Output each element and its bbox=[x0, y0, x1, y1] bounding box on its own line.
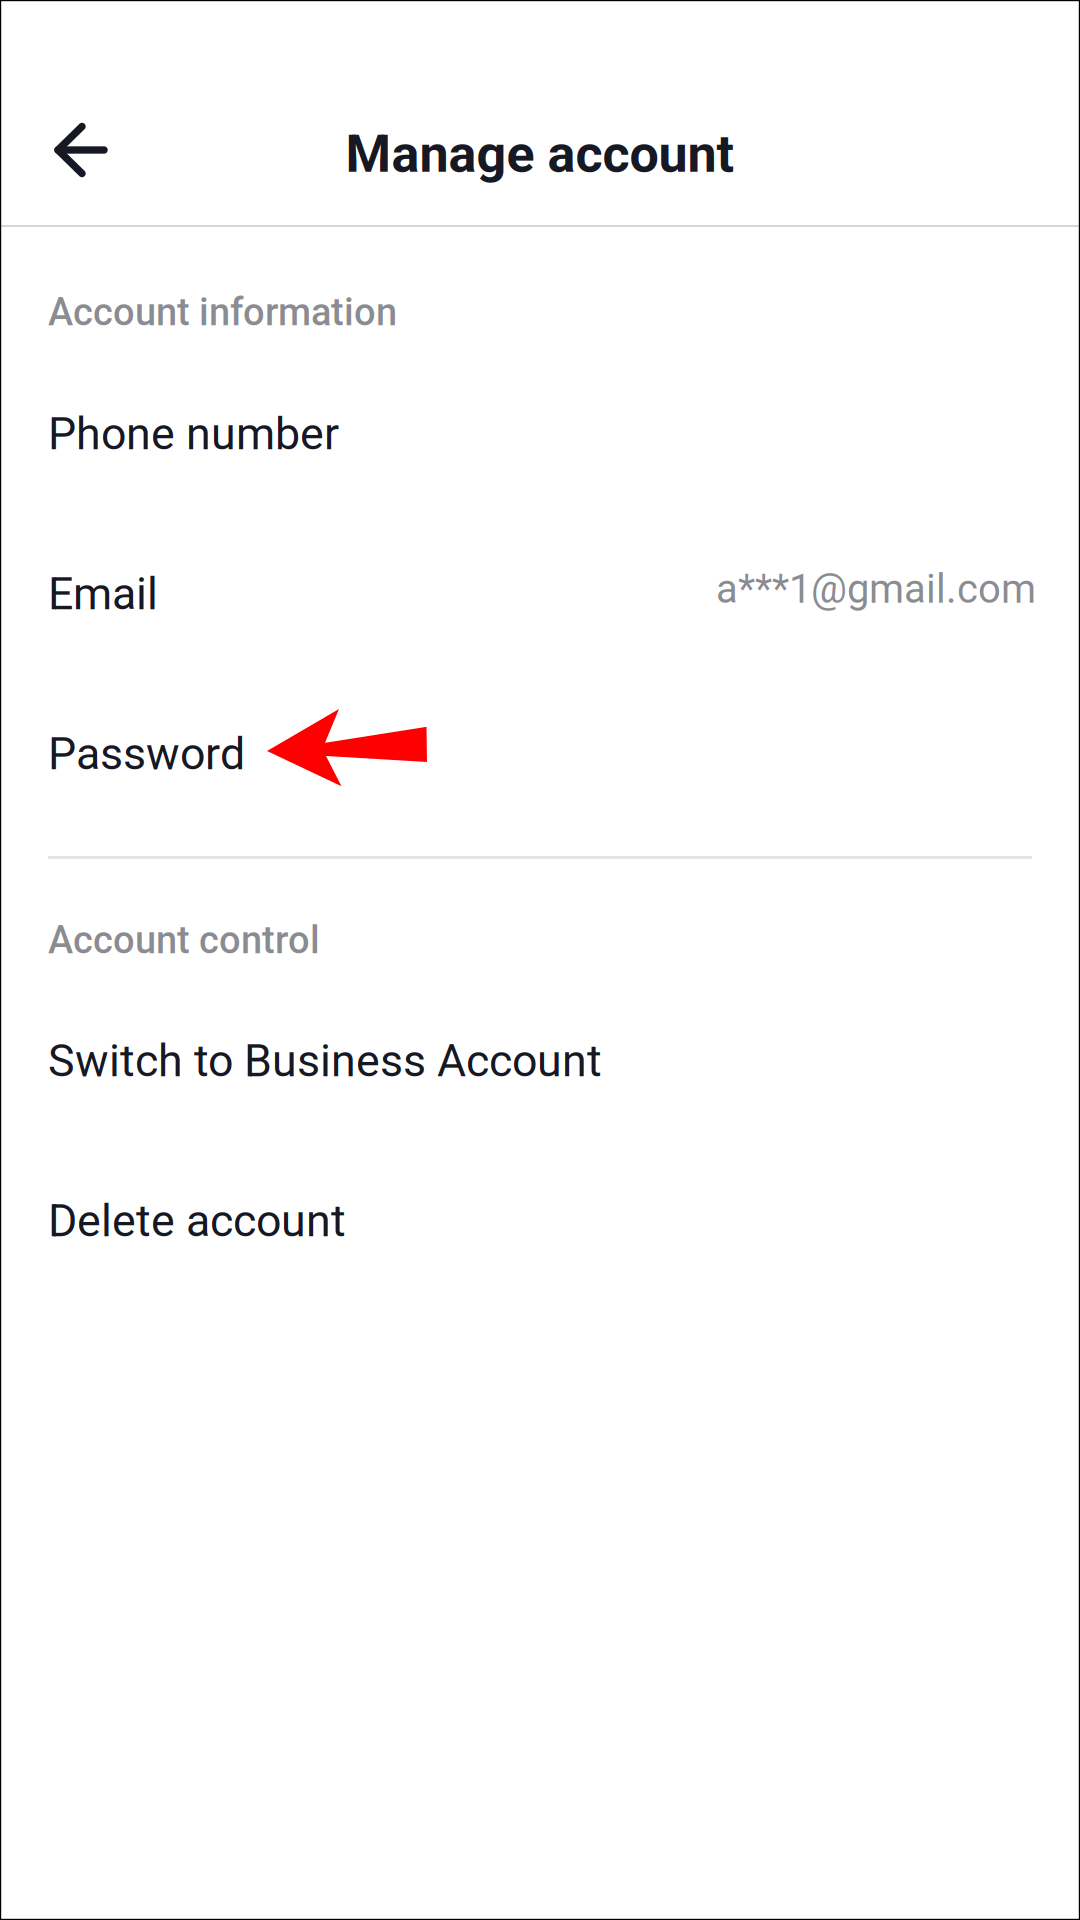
staticText: Account control bbox=[48, 918, 320, 962]
staticText: Phone number bbox=[48, 408, 339, 460]
staticText: Password bbox=[48, 728, 245, 780]
staticText: Delete account bbox=[48, 1195, 346, 1247]
button[interactable]: Switch to Business Account bbox=[0, 981, 1080, 1141]
button[interactable]: Password bbox=[0, 674, 1080, 834]
button[interactable]: Email bbox=[0, 514, 1080, 674]
staticText: a***1@gmail.com bbox=[716, 566, 1036, 612]
staticText: Email bbox=[48, 568, 158, 620]
button[interactable]: Phone number bbox=[0, 354, 1080, 514]
button[interactable]: Delete account bbox=[0, 1141, 1080, 1301]
staticText: Manage account bbox=[345, 123, 734, 184]
button[interactable]: Back bbox=[0, 0, 132, 188]
staticText: Account information bbox=[48, 290, 397, 334]
staticText: Switch to Business Account bbox=[48, 1035, 602, 1087]
